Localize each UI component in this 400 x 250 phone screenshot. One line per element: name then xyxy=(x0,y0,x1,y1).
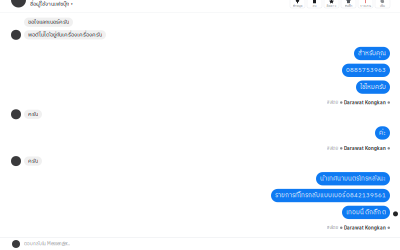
staticText: ส่งโดย xyxy=(326,145,338,152)
staticText: เพิ่ม xyxy=(380,4,385,8)
staticText: Darawat Kongkan xyxy=(344,225,386,230)
staticText: เทอมนี้ ดีกลึก ต xyxy=(346,207,386,217)
button[interactable]: ครับ xyxy=(11,156,390,166)
staticText: ▾ xyxy=(71,2,73,6)
staticText: รายงาน xyxy=(360,4,371,8)
staticText: Darawat Kongkan xyxy=(344,100,386,105)
button[interactable]: ลบ xyxy=(307,0,322,8)
button[interactable]: พอดีไม่ได้อยู่กับเครื่องเครื่องครับ xyxy=(11,30,390,40)
staticText: สำหรับคุณ xyxy=(358,48,386,58)
staticText: ลบ xyxy=(312,4,316,8)
button[interactable]: ปักหมุด xyxy=(290,0,305,8)
staticText: ติดดาว xyxy=(326,4,336,8)
button[interactable]: ขอใจแลกเบอร์ครับ xyxy=(11,18,390,27)
staticText: ครับ xyxy=(28,110,38,119)
button[interactable]: รายงาน xyxy=(358,0,373,8)
staticText: 0885753963 xyxy=(346,65,386,75)
staticText: ส่งโดย xyxy=(326,99,338,106)
button[interactable]: บันทึก xyxy=(341,0,356,8)
staticText: ชื่อผู้ใช้งานเฟซบุ๊ก xyxy=(30,0,69,9)
staticText: ขอใจแลกเบอร์ครับ xyxy=(28,18,69,27)
staticText: พอดีไม่ได้อยู่กับเครื่องเครื่องครับ xyxy=(28,30,102,39)
staticText: Darawat Kongkan xyxy=(344,146,386,151)
staticText: ค่ะ xyxy=(379,128,386,138)
staticText: นำเทศนามนตรโทรหลังนะ xyxy=(320,174,386,184)
button[interactable]: ครับ xyxy=(11,109,390,119)
button[interactable]: ตอบกลับใน Messenger... xyxy=(0,238,400,250)
staticText: ส่งโดย xyxy=(326,224,338,231)
button[interactable]: เพิ่ม xyxy=(375,0,390,8)
staticText: ปักหมุด xyxy=(292,4,302,8)
staticText: บันทึก xyxy=(344,4,352,8)
button[interactable]: ติดดาว xyxy=(324,0,339,8)
staticText: ใช่ไหมครับ xyxy=(360,82,386,92)
staticText: รายการที่โทรกลับแบบเบอร์ 0842139561 xyxy=(275,190,386,201)
button[interactable]: ชื่อผู้ใช้งานเฟซบุ๊ก xyxy=(11,0,73,11)
staticText: ครับ xyxy=(28,156,38,166)
staticText: ตอบกลับใน Messenger... xyxy=(24,240,70,248)
